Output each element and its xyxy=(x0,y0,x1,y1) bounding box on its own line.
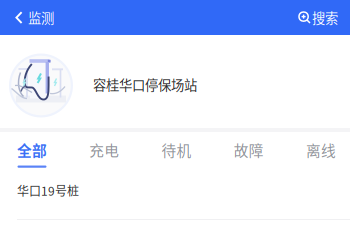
staticText: 搜索 xyxy=(312,8,338,27)
staticText: 待机 xyxy=(161,139,191,160)
button[interactable]: 全部 xyxy=(17,132,47,169)
button[interactable]: 华口19号桩 xyxy=(0,169,350,220)
button[interactable]: 故障 xyxy=(234,132,264,169)
staticText: 容桂华口停保场站 xyxy=(93,75,197,94)
button[interactable]: 离线 xyxy=(306,132,336,169)
button[interactable]: 充电 xyxy=(89,132,119,169)
staticText: 离线 xyxy=(306,139,336,160)
staticText: 全部 xyxy=(17,139,47,160)
staticText: 华口19号桩 xyxy=(17,182,79,199)
button[interactable]: 监测 xyxy=(0,0,64,35)
staticText: 故障 xyxy=(234,139,264,160)
button[interactable]: 待机 xyxy=(161,132,191,169)
button[interactable]: 搜索 xyxy=(298,0,350,35)
staticText: 充电 xyxy=(89,139,119,160)
staticText: 监测 xyxy=(28,8,54,27)
